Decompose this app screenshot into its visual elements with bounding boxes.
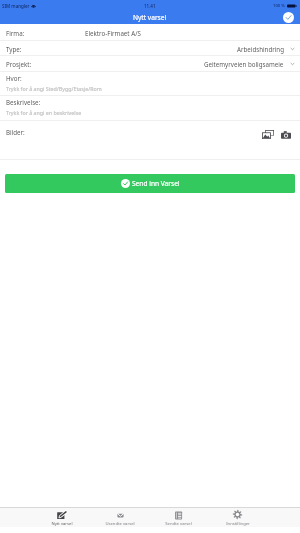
staticText: Usendte varsel <box>105 521 135 527</box>
staticText: Sendte varsel <box>165 521 192 527</box>
staticText: Innstillinger <box>226 521 250 527</box>
button[interactable]: Bekreft <box>283 12 294 23</box>
button[interactable]: Firma: <box>0 24 300 40</box>
staticText: Bilder: <box>6 128 25 136</box>
button[interactable]: Send inn Varsel <box>5 174 295 193</box>
staticText: Send inn Varsel <box>132 179 180 188</box>
staticText: Elektro-Firmaet A/S <box>85 29 141 37</box>
staticText: Nytt varsel <box>51 521 73 527</box>
button[interactable]: Sendte varsel <box>149 508 208 527</box>
staticText: Firma: <box>6 29 25 37</box>
button[interactable]: Nytt varsel <box>33 508 91 527</box>
staticText: Hvor: <box>6 74 22 82</box>
button[interactable]: Prosjekt: <box>0 55 300 71</box>
button[interactable]: Velg bilde fra galleri <box>262 130 274 139</box>
staticText: Arbeidshindring <box>237 45 284 53</box>
button[interactable]: Innstillinger <box>208 508 267 527</box>
button[interactable]: Hvor: <box>0 71 300 96</box>
button[interactable]: Beskrivelse: <box>0 95 300 120</box>
staticText: Geitemyrveien boligsameie <box>204 60 284 68</box>
staticText: Prosjekt: <box>6 60 32 68</box>
staticText: 11.41 <box>144 3 156 9</box>
button[interactable]: Ta bilde med kamera <box>281 131 291 139</box>
staticText: Type: <box>6 45 22 53</box>
staticText: Trykk for å angi Sted/Bygg/Etasje/Rom <box>6 85 102 92</box>
staticText: SIM mangler <box>2 3 30 9</box>
staticText: Beskrivelse: <box>6 98 41 106</box>
button[interactable]: Type: <box>0 40 300 55</box>
staticText: Nytt varsel <box>133 13 167 22</box>
button[interactable]: Usendte varsel <box>91 508 149 527</box>
staticText: Trykk for å angi en beskrivelse <box>6 109 82 116</box>
staticText: 100 % <box>273 3 285 9</box>
